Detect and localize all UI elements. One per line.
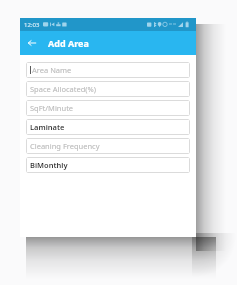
button[interactable]: Laminate	[26, 119, 190, 135]
button[interactable]: Cleaning Frequency	[26, 138, 190, 154]
button[interactable]: Area Name	[26, 62, 190, 78]
button[interactable]: Navigate up	[23, 34, 41, 52]
staticText: 12:03	[24, 21, 40, 29]
staticText: Cleaning Frequency	[30, 141, 100, 151]
staticText: SqFt/Minute	[30, 103, 74, 113]
button[interactable]: BiMonthly	[26, 157, 190, 173]
staticText: BiMonthly	[30, 160, 68, 170]
staticText: Laminate	[30, 122, 65, 132]
button[interactable]: Space Allocated(%)	[26, 81, 190, 97]
button[interactable]: SqFt/Minute	[26, 100, 190, 116]
staticText: Space Allocated(%)	[30, 84, 97, 94]
staticText: Area Name	[32, 65, 72, 75]
staticText: Add Area	[48, 37, 89, 49]
